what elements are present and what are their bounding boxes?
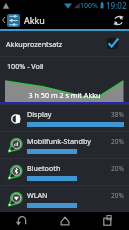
staticText: 3 h 50 m 2 s mit Akku [28,90,101,100]
button[interactable]: Home [43,212,86,230]
staticText: 38% [111,110,124,119]
staticText: WLAN [27,190,48,200]
button[interactable]: Back [0,11,7,29]
button[interactable]: Akkuprozentsatz [0,31,129,56]
staticText: Akkuprozentsatz [6,39,63,49]
button[interactable]: Recents [86,212,129,230]
staticText: 19:02 [106,0,127,11]
staticText: 100% [80,1,98,11]
staticText: 20% [111,164,124,173]
button[interactable]: Refresh [109,11,127,29]
staticText: Akku [24,14,45,26]
staticText: Mobilfunk-Standby [27,136,91,146]
staticText: Display [27,109,52,119]
staticText: Bluetooth [27,163,61,173]
button[interactable]: Back [0,212,43,230]
button[interactable]: Mobilfunk-Standby [0,132,129,158]
staticText: 20% [111,191,124,200]
button[interactable]: WLAN [0,186,129,212]
staticText: 20% [111,137,124,146]
button[interactable]: Bluetooth [0,159,129,185]
button[interactable]: Display [0,105,129,131]
staticText: 100% - Voll [7,61,44,71]
